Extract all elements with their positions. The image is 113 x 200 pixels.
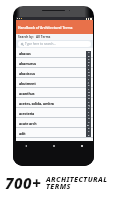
button[interactable]: acetes, solida, umbra [16, 98, 93, 108]
staticText: W [87, 124, 90, 127]
staticText: H [88, 74, 90, 77]
staticText: T [88, 114, 90, 117]
staticText: I [88, 78, 89, 81]
button[interactable]: acute arch [16, 118, 93, 128]
staticText: acetes, solida, umbra [19, 101, 54, 106]
staticText: O [88, 97, 90, 100]
staticText: abutment [19, 81, 36, 86]
staticText: J [88, 81, 89, 84]
button[interactable]: acanthus [16, 88, 93, 98]
staticText: A [88, 51, 90, 54]
staticText: F [88, 68, 90, 71]
button[interactable]: abacus [16, 48, 93, 58]
staticText: V [88, 121, 90, 124]
staticText: acute arch [19, 121, 37, 126]
button[interactable]: adit [16, 128, 93, 138]
staticText: 700+ [5, 173, 42, 193]
staticText: R [88, 107, 90, 110]
staticText: acanthus [19, 91, 35, 96]
staticText: C [88, 58, 90, 61]
staticText: adit [19, 131, 26, 136]
staticText: M [88, 91, 90, 94]
button[interactable]: Search by: All Terms [16, 34, 93, 40]
staticText: S [88, 111, 90, 114]
staticText: P [88, 101, 90, 104]
staticText: L [88, 88, 90, 91]
staticText: E [88, 64, 90, 67]
staticText: Q [88, 104, 90, 107]
staticText: ARCHITECTURAL TERMS [46, 174, 108, 191]
staticText: D [88, 61, 90, 64]
staticText: Z [88, 134, 90, 137]
staticText: Type here to search... [25, 42, 56, 46]
staticText: Handbook of Architectural Terms [18, 25, 73, 29]
staticText: Y [88, 130, 90, 133]
button[interactable]: Alphabet index [86, 51, 91, 137]
staticText: X [88, 127, 90, 130]
staticText: U [88, 117, 90, 120]
staticText: K [88, 84, 90, 87]
staticText: acroteria [19, 111, 35, 116]
staticText: abamurus [19, 61, 36, 66]
button[interactable]: abamurus [16, 58, 93, 68]
button[interactable]: Type here to search... [18, 41, 91, 47]
staticText: abaciscus [19, 71, 35, 76]
button[interactable]: Home [51, 143, 56, 148]
button[interactable]: Recents [79, 143, 84, 148]
staticText: Search by: All Terms [18, 35, 51, 39]
staticText: abacus [19, 51, 31, 56]
button[interactable]: acroteria [16, 108, 93, 118]
button[interactable]: abutment [16, 78, 93, 88]
button[interactable]: Handbook of Architectural Terms [16, 20, 93, 34]
button[interactable]: abaciscus [16, 68, 93, 78]
staticText: B [88, 55, 90, 58]
staticText: N [88, 94, 90, 97]
staticText: G [88, 71, 90, 74]
button[interactable]: Back [23, 143, 28, 148]
